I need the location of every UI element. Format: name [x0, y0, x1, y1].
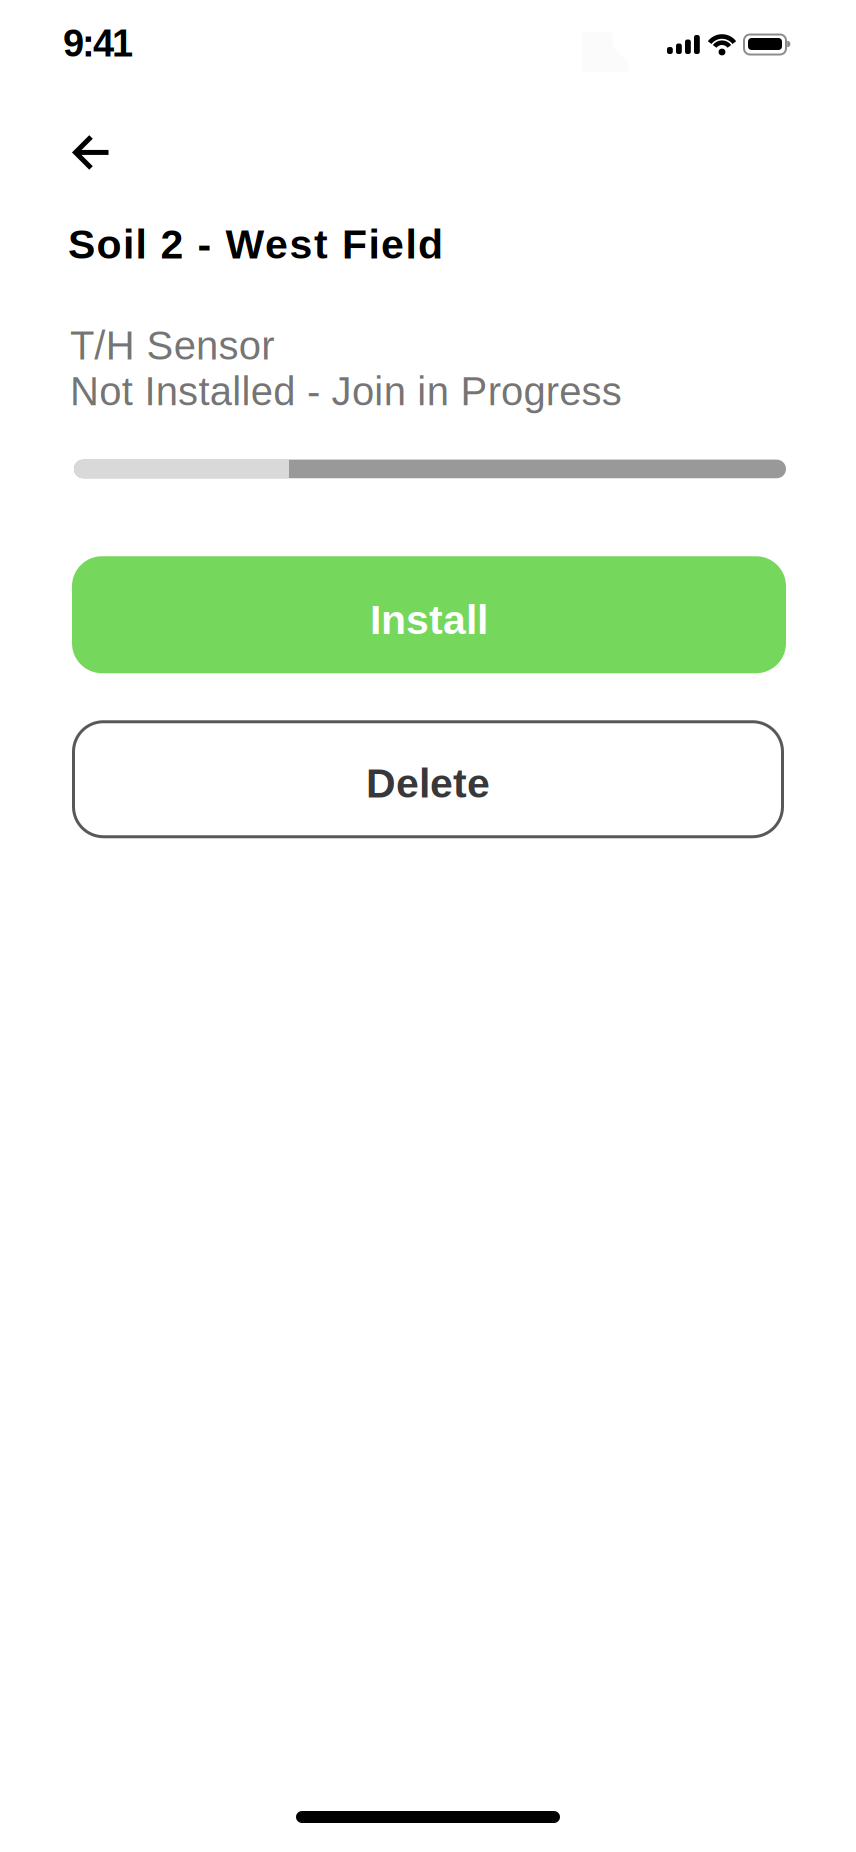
- staticText: T/H Sensor Not Installed - Join in Progr…: [70, 323, 622, 414]
- button[interactable]: Install: [72, 556, 786, 673]
- staticText: Delete: [366, 760, 490, 806]
- button[interactable]: Back: [0, 134, 110, 170]
- button[interactable]: Delete: [72, 720, 784, 838]
- staticText: Soil 2 - West Field: [68, 221, 443, 267]
- staticText: 9:41: [63, 22, 133, 64]
- staticText: Install: [370, 597, 488, 643]
